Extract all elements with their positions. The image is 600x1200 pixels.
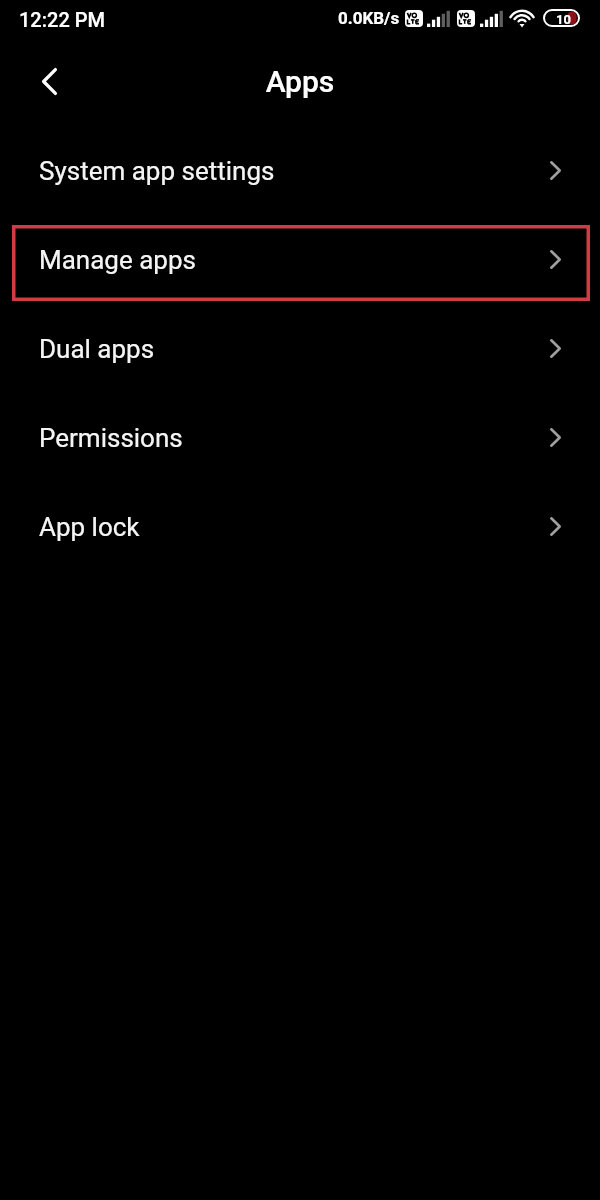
other: VoLTE [457, 10, 475, 27]
other: VoLTE [405, 10, 423, 27]
button[interactable]: System app settings [0, 126, 600, 215]
button[interactable]: Back [17, 50, 81, 112]
button[interactable]: Manage apps [0, 215, 600, 304]
other: Wi-Fi [509, 9, 535, 27]
staticText: 10 [556, 12, 571, 27]
button[interactable]: Permissions [0, 393, 600, 482]
staticText: System app settings [39, 156, 275, 186]
staticText: 12:22 PM [19, 8, 106, 31]
other: Mobile signal [427, 9, 451, 27]
staticText: Permissions [39, 423, 183, 453]
other: Mobile signal [480, 9, 504, 27]
other: Battery 10 percent [543, 9, 580, 27]
staticText: App lock [39, 512, 140, 542]
staticText: 0.0KB/s [338, 8, 400, 28]
staticText: Apps [0, 64, 600, 99]
button[interactable]: Dual apps [0, 304, 600, 393]
staticText: Manage apps [39, 245, 196, 275]
staticText: Dual apps [39, 334, 155, 364]
button[interactable]: App lock [0, 482, 600, 571]
